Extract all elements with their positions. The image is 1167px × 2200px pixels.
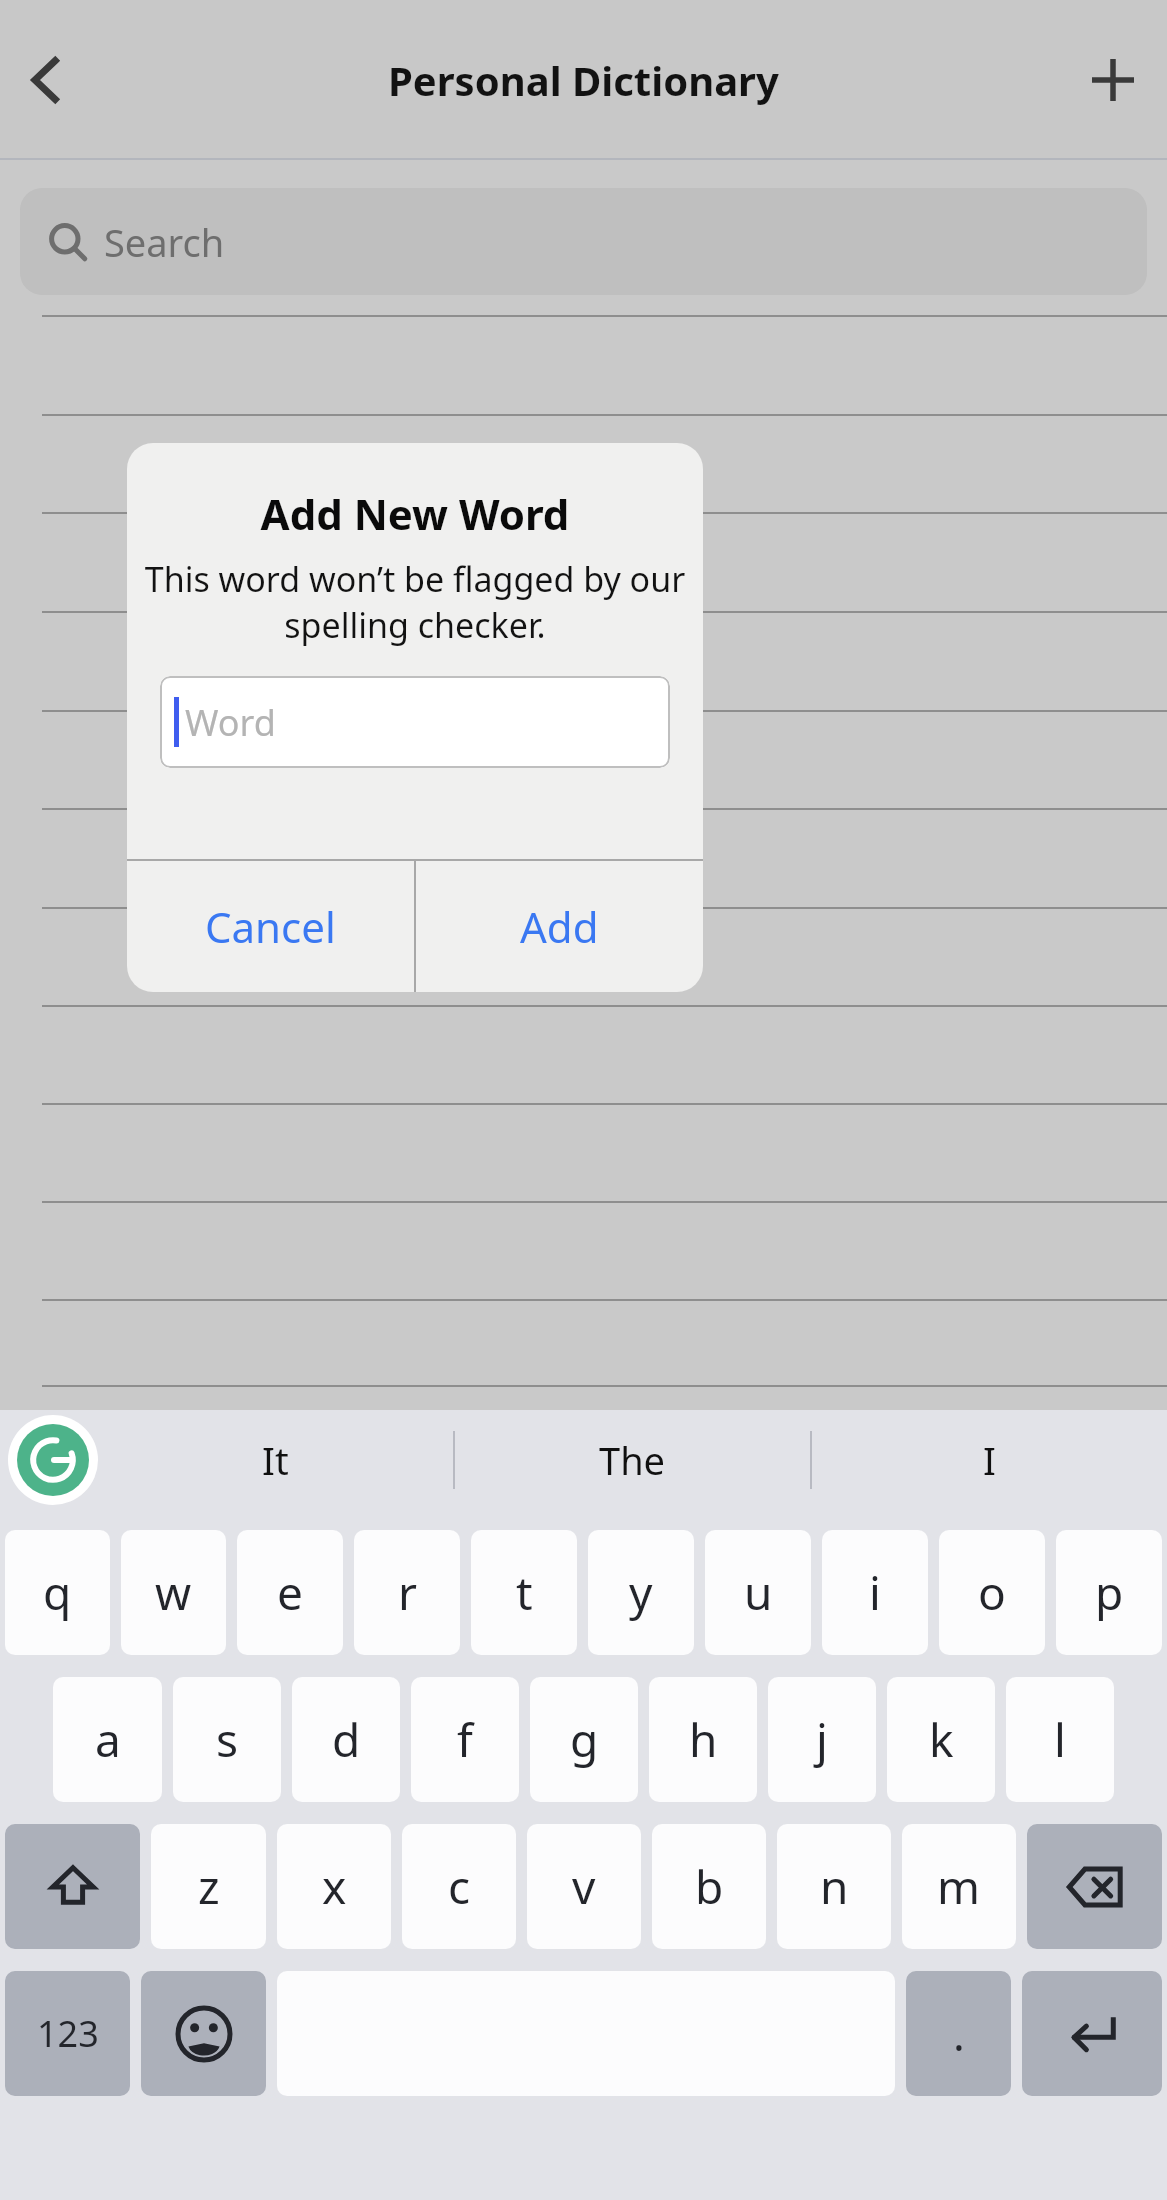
staticText: m bbox=[937, 1855, 981, 1918]
button[interactable]: It bbox=[98, 1410, 453, 1510]
staticText: g bbox=[570, 1708, 599, 1771]
button[interactable]: e bbox=[237, 1530, 343, 1655]
button[interactable]: x bbox=[277, 1824, 391, 1949]
button[interactable]: . bbox=[906, 1971, 1011, 2096]
staticText: v bbox=[572, 1855, 596, 1918]
button[interactable]: Add bbox=[416, 861, 703, 992]
staticText: p bbox=[1095, 1561, 1124, 1624]
button[interactable]: The bbox=[455, 1410, 810, 1510]
button[interactable]: Return bbox=[1022, 1971, 1162, 2096]
staticText: l bbox=[1054, 1708, 1066, 1771]
staticText: x bbox=[322, 1855, 347, 1918]
button[interactable]: Back bbox=[6, 40, 86, 120]
button[interactable]: 123 bbox=[5, 1971, 130, 2096]
staticText: d bbox=[332, 1708, 361, 1771]
button[interactable]: m bbox=[902, 1824, 1016, 1949]
staticText: Word bbox=[185, 698, 276, 747]
button[interactable]: Backspace bbox=[1027, 1824, 1162, 1949]
staticText: j bbox=[816, 1708, 828, 1771]
button[interactable]: g bbox=[530, 1677, 638, 1802]
staticText: o bbox=[978, 1561, 1006, 1624]
staticText: Personal Dictionary bbox=[388, 53, 779, 107]
button[interactable]: d bbox=[292, 1677, 400, 1802]
button[interactable]: l bbox=[1006, 1677, 1114, 1802]
button[interactable]: s bbox=[173, 1677, 281, 1802]
button[interactable]: c bbox=[402, 1824, 516, 1949]
button[interactable]: t bbox=[471, 1530, 577, 1655]
button[interactable]: p bbox=[1056, 1530, 1162, 1655]
button[interactable]: Grammarly bbox=[8, 1415, 98, 1505]
button[interactable]: a bbox=[53, 1677, 162, 1802]
staticText: The bbox=[599, 1434, 666, 1486]
staticText: z bbox=[198, 1855, 220, 1918]
staticText: 123 bbox=[37, 2009, 99, 2058]
button[interactable]: Add bbox=[1073, 40, 1153, 120]
staticText: r bbox=[398, 1561, 417, 1624]
button[interactable]: u bbox=[705, 1530, 811, 1655]
button[interactable]: i bbox=[822, 1530, 928, 1655]
staticText: Search bbox=[104, 216, 225, 268]
button[interactable]: Shift bbox=[5, 1824, 140, 1949]
staticText: b bbox=[695, 1855, 724, 1918]
staticText: f bbox=[457, 1708, 473, 1771]
staticText: w bbox=[155, 1561, 192, 1624]
staticText: y bbox=[629, 1561, 653, 1624]
staticText: c bbox=[448, 1855, 471, 1918]
button[interactable]: I bbox=[812, 1410, 1167, 1510]
button[interactable]: Search bbox=[20, 188, 1147, 295]
button[interactable]: f bbox=[411, 1677, 519, 1802]
staticText: t bbox=[516, 1561, 533, 1624]
button[interactable]: k bbox=[887, 1677, 995, 1802]
button[interactable]: o bbox=[939, 1530, 1045, 1655]
button[interactable]: n bbox=[777, 1824, 891, 1949]
staticText: Cancel bbox=[205, 898, 336, 955]
staticText: q bbox=[43, 1561, 72, 1624]
staticText: e bbox=[277, 1561, 303, 1624]
staticText: k bbox=[929, 1708, 954, 1771]
staticText: This word won’t be flagged by our spelli… bbox=[143, 556, 687, 648]
button[interactable]: h bbox=[649, 1677, 757, 1802]
button[interactable]: Emoji bbox=[141, 1971, 266, 2096]
staticText: h bbox=[689, 1708, 718, 1771]
staticText: Add bbox=[520, 898, 599, 955]
staticText: . bbox=[953, 2004, 965, 2064]
staticText: i bbox=[869, 1561, 881, 1624]
button[interactable]: Word bbox=[160, 676, 670, 768]
button[interactable]: w bbox=[121, 1530, 226, 1655]
button[interactable]: v bbox=[527, 1824, 641, 1949]
staticText: It bbox=[262, 1434, 289, 1486]
staticText: s bbox=[216, 1708, 239, 1771]
staticText: a bbox=[95, 1708, 121, 1771]
staticText: u bbox=[744, 1561, 773, 1624]
button[interactable]: r bbox=[354, 1530, 460, 1655]
button[interactable]: j bbox=[768, 1677, 876, 1802]
button[interactable]: b bbox=[652, 1824, 766, 1949]
staticText: Add New Word bbox=[127, 485, 703, 542]
button[interactable]: Cancel bbox=[127, 861, 414, 992]
button[interactable]: q bbox=[5, 1530, 110, 1655]
staticText: I bbox=[983, 1434, 996, 1486]
staticText: n bbox=[820, 1855, 849, 1918]
button[interactable]: z bbox=[151, 1824, 266, 1949]
button[interactable]: y bbox=[588, 1530, 694, 1655]
